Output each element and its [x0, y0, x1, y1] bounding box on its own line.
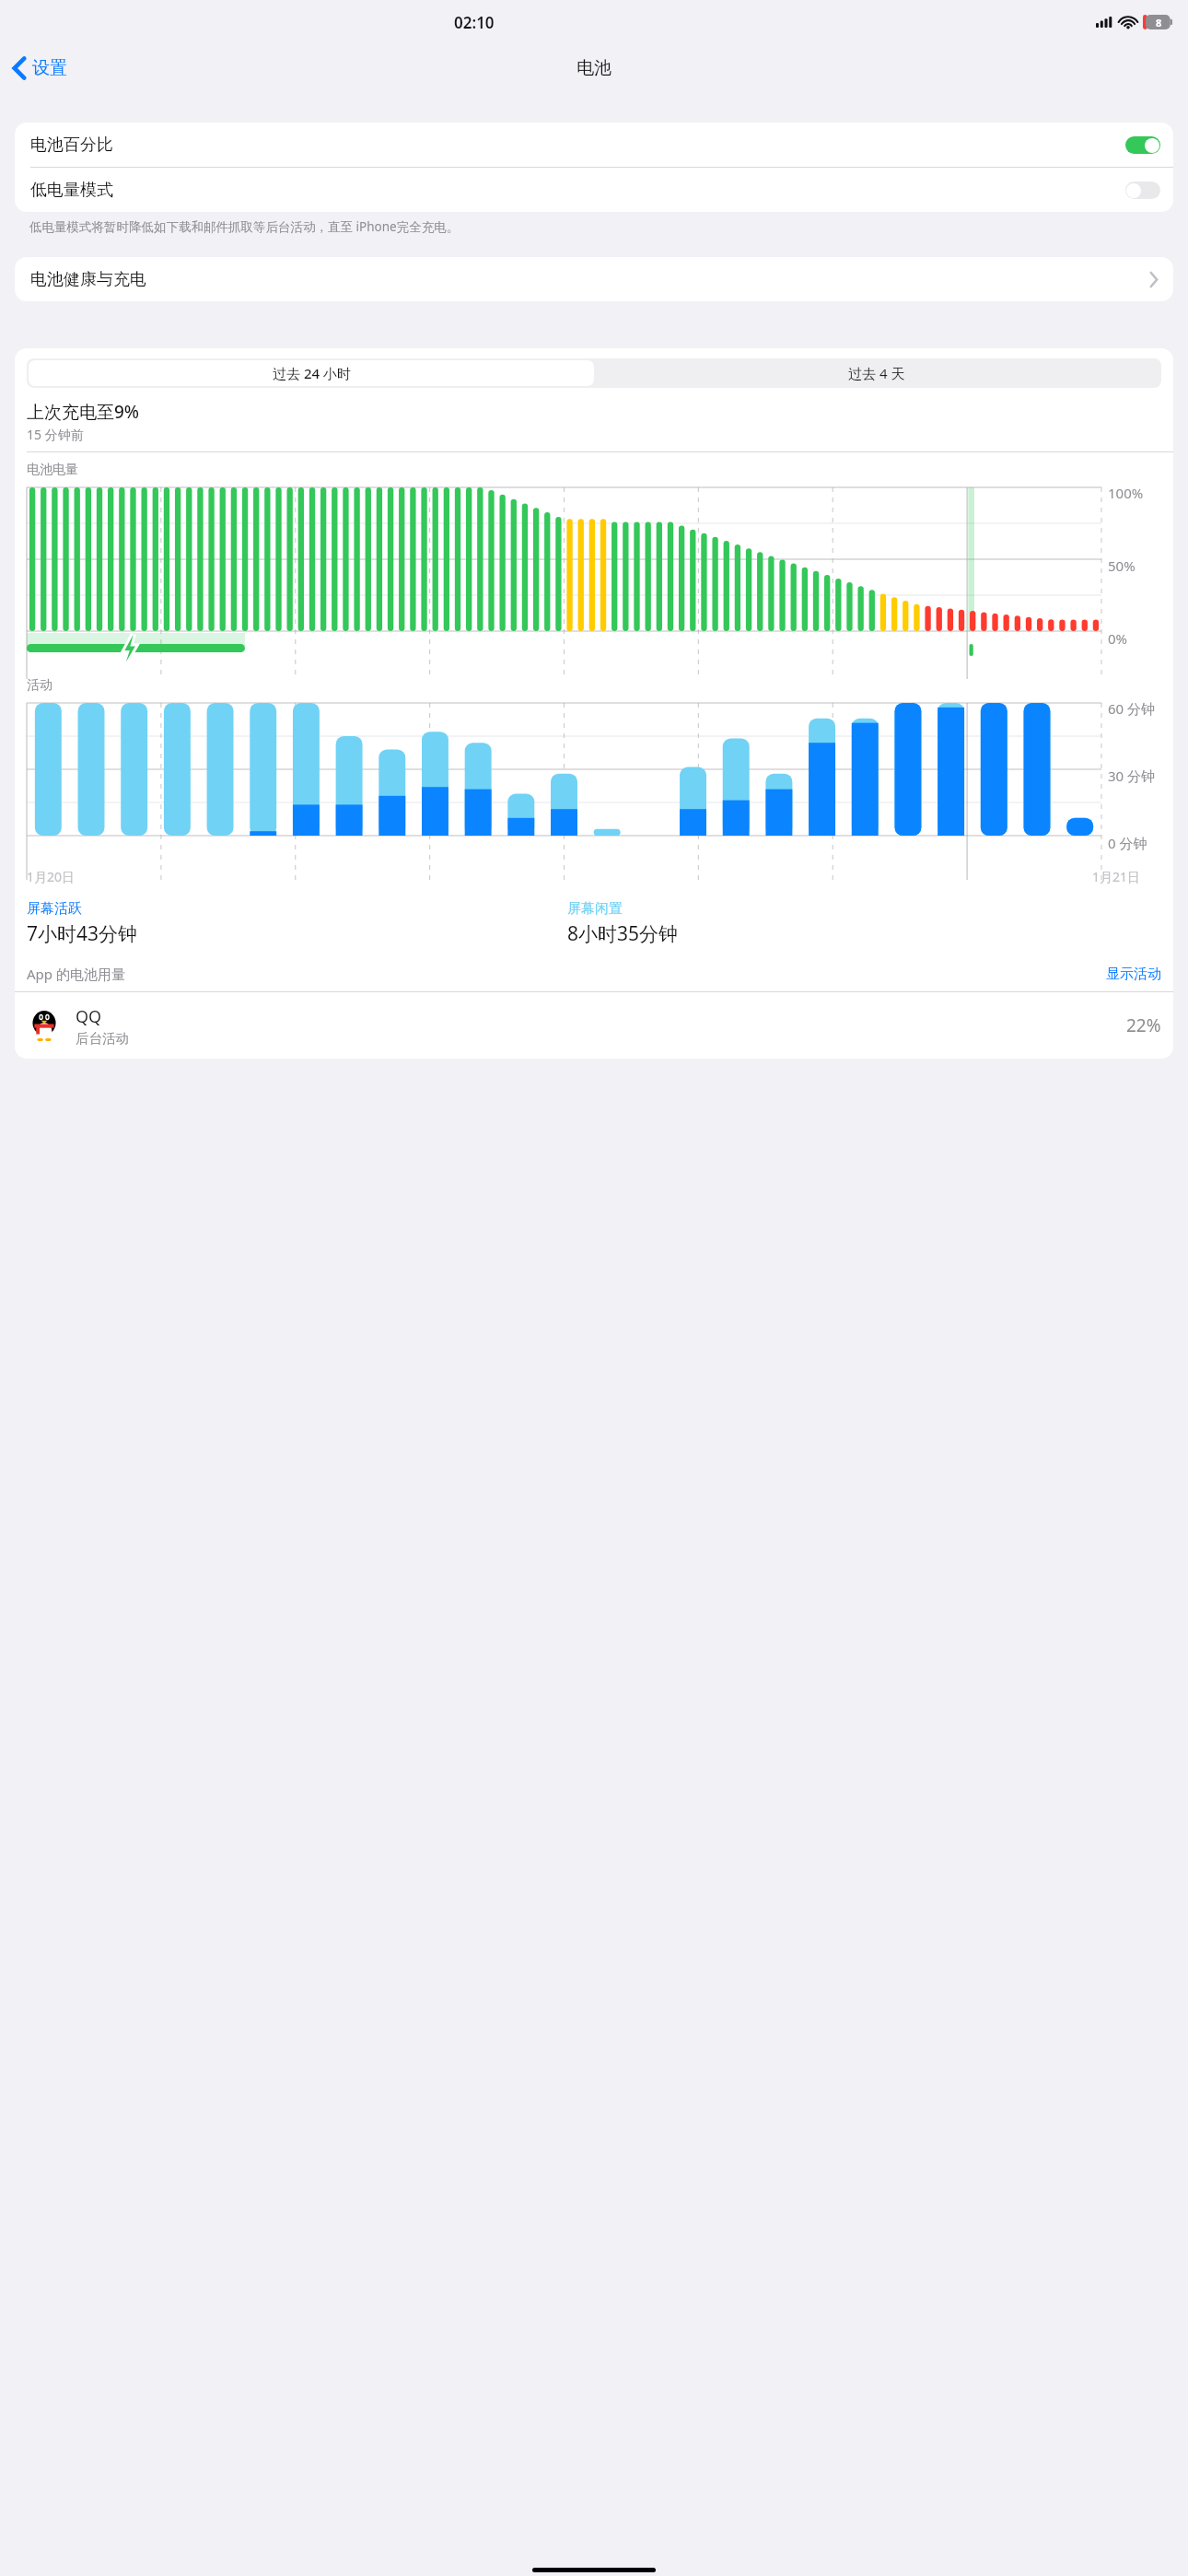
staticText: 15 分钟前 — [27, 426, 84, 443]
button[interactable]: 显示活动 — [1106, 966, 1161, 983]
staticText: 100% — [1108, 484, 1144, 502]
button[interactable]: 过去 4 天 — [594, 360, 1159, 386]
staticText: 活动 — [27, 677, 52, 694]
staticText: 30 分钟 — [1108, 767, 1156, 785]
staticText: 0 分钟 — [1108, 834, 1147, 852]
staticText: 低电量模式将暂时降低如下载和邮件抓取等后台活动，直至 iPhone完全充电。 — [29, 218, 460, 235]
button[interactable]: 低电量模式 — [15, 168, 1173, 212]
staticText: 上次充电至9% — [27, 400, 140, 424]
staticText: 0% — [1108, 629, 1128, 648]
staticText: 屏幕闲置 — [567, 900, 623, 918]
staticText: 电池健康与充电 — [30, 269, 1150, 290]
staticText: 22% — [1126, 1013, 1161, 1037]
staticText: 50% — [1108, 556, 1136, 575]
staticText: 电池 — [577, 57, 611, 79]
staticText: 设置 — [32, 57, 67, 79]
staticText: 8 — [1156, 16, 1162, 29]
staticText: 低电量模式 — [30, 180, 1125, 201]
staticText: 8小时35分钟 — [567, 920, 679, 947]
staticText: 过去 24 小时 — [273, 364, 351, 382]
staticText: 电池电量 — [27, 462, 78, 478]
button[interactable]: 电池健康与充电 — [15, 257, 1173, 301]
staticText: 7小时43分钟 — [27, 920, 138, 947]
button[interactable] — [1125, 181, 1160, 199]
staticText: QQ — [76, 1005, 102, 1028]
button[interactable]: 设置 — [9, 53, 71, 83]
staticText: App 的电池用量 — [27, 965, 1106, 983]
staticText: 过去 4 天 — [848, 364, 905, 382]
staticText: 后台活动 — [76, 1030, 129, 1047]
button[interactable] — [1125, 136, 1160, 154]
staticText: 屏幕活跃 — [27, 900, 82, 918]
staticText: 1月21日 — [1092, 868, 1141, 885]
button[interactable]: QQ — [15, 992, 1173, 1059]
staticText: 1月20日 — [27, 868, 76, 885]
button[interactable]: 过去 24 小时 — [29, 360, 594, 386]
staticText: 显示活动 — [1106, 966, 1161, 983]
staticText: 02:10 — [454, 12, 495, 33]
staticText: 电池百分比 — [30, 135, 1125, 156]
button[interactable]: 电池百分比 — [15, 123, 1173, 167]
staticText: 60 分钟 — [1108, 699, 1156, 718]
